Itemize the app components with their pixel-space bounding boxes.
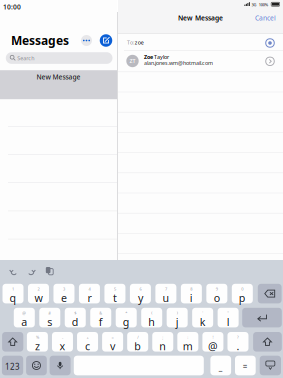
button[interactable]: 0 — [232, 284, 253, 303]
staticText: f — [99, 315, 103, 329]
staticText: j — [176, 315, 179, 329]
button[interactable]: & — [90, 308, 111, 327]
staticText: y — [138, 291, 143, 305]
staticText: m — [183, 339, 193, 353]
button[interactable]: ! — [202, 332, 223, 352]
staticText: 10:00 — [3, 2, 21, 11]
button[interactable]: = — [235, 356, 256, 375]
staticText: i — [190, 291, 193, 305]
staticText: 2 — [37, 286, 39, 292]
button[interactable]: ( — [141, 308, 162, 327]
button[interactable]: Emoji — [26, 356, 47, 375]
button[interactable]: Return — [242, 308, 282, 327]
staticText: 6 — [139, 286, 141, 292]
button[interactable]: Dictate — [50, 356, 71, 375]
staticText: Messages — [11, 32, 69, 48]
staticText: s — [47, 315, 52, 329]
button[interactable]: Delete — [258, 284, 282, 303]
button[interactable]: Cancel — [248, 12, 276, 23]
button[interactable]: 7 — [155, 284, 176, 303]
button[interactable]: 2 — [28, 284, 49, 303]
staticText: / — [137, 335, 138, 340]
staticText: l — [227, 315, 230, 329]
staticText: 7 — [165, 286, 167, 292]
staticText: n — [159, 339, 166, 353]
staticText: New Message — [178, 14, 223, 22]
staticText: - — [62, 335, 63, 340]
button[interactable]: / — [127, 332, 148, 352]
button[interactable]: * — [116, 308, 137, 327]
staticText: k — [200, 315, 206, 329]
staticText: v — [110, 339, 115, 353]
staticText: ; — [162, 335, 163, 340]
staticText: 100% — [259, 2, 268, 7]
staticText: % — [36, 335, 39, 340]
staticText: zoe — [135, 39, 144, 46]
button[interactable]: 5 — [104, 284, 125, 303]
button[interactable]: ) — [167, 308, 188, 327]
button[interactable]: # — [39, 308, 60, 327]
button[interactable]: Paste — [43, 265, 55, 277]
button[interactable]: Shift — [253, 332, 282, 352]
button[interactable]: $ — [65, 308, 86, 327]
staticText: @ — [208, 339, 218, 353]
staticText: + — [86, 335, 88, 340]
button[interactable]: 3 — [53, 284, 74, 303]
staticText: ' — [202, 310, 203, 316]
button[interactable]: Search — [6, 52, 112, 64]
staticText: = — [112, 335, 114, 340]
button[interactable]: Shift — [2, 332, 23, 352]
button[interactable]: 9 — [206, 284, 227, 303]
button[interactable]: Add Contact — [263, 36, 276, 49]
button[interactable]: ? — [227, 332, 248, 352]
staticText: d — [72, 315, 79, 329]
button[interactable]: : — [177, 332, 198, 352]
staticText: # — [48, 310, 51, 316]
button[interactable]: New Message — [0, 70, 117, 99]
staticText: b — [134, 339, 141, 353]
button[interactable]: 4 — [79, 284, 100, 303]
staticText: w — [34, 291, 42, 305]
button[interactable]: ' — [192, 308, 213, 327]
button[interactable]: New Message — [99, 33, 113, 47]
button[interactable]: 8 — [181, 284, 202, 303]
button[interactable]: = — [102, 332, 123, 352]
staticText: r — [87, 291, 91, 305]
staticText: 123 — [5, 361, 20, 372]
staticText: To: — [127, 39, 134, 46]
staticText: ! — [212, 335, 213, 340]
staticText: ( — [151, 310, 152, 316]
staticText: x — [59, 339, 65, 353]
staticText: q — [9, 291, 16, 305]
staticText: c — [85, 339, 90, 353]
button[interactable]: - — [52, 332, 73, 352]
staticText: a — [21, 315, 27, 329]
staticText: _ — [219, 361, 223, 372]
button[interactable]: Redo — [25, 265, 37, 277]
staticText: alan.jones.wm@hotmail.com — [144, 59, 213, 66]
staticText: 8 — [190, 286, 192, 292]
staticText: = — [243, 361, 248, 372]
button[interactable]: " — [218, 308, 239, 327]
button[interactable]: Hide Keyboard — [260, 356, 281, 375]
staticText: ) — [177, 310, 178, 316]
staticText: ? — [237, 335, 239, 340]
staticText: . — [236, 339, 239, 353]
staticText: Zoe — [144, 53, 153, 60]
button[interactable]: 6 — [130, 284, 151, 303]
button[interactable]: ; — [152, 332, 173, 352]
button[interactable]: ZT — [118, 51, 283, 72]
button[interactable]: More — [79, 33, 93, 47]
staticText: $ — [74, 310, 76, 316]
staticText: & — [99, 310, 102, 316]
button[interactable]: + — [77, 332, 98, 352]
staticText: Cancel — [255, 14, 276, 22]
button[interactable]: Undo — [7, 265, 19, 277]
button[interactable]: 123 — [2, 356, 23, 375]
button[interactable]: % — [27, 332, 48, 352]
staticText: 4 — [88, 286, 90, 292]
button[interactable]: @ — [14, 308, 35, 327]
button[interactable]: 1 — [2, 284, 23, 303]
button[interactable]: _ — [210, 356, 231, 375]
